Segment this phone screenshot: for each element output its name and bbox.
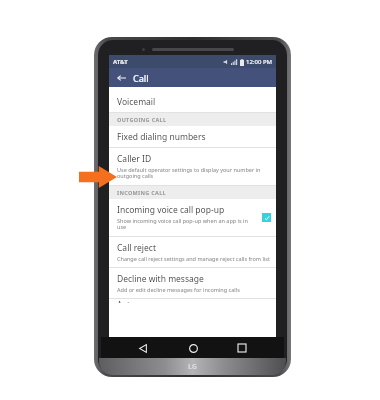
staticText: Use default operator settings to display…	[117, 166, 271, 180]
staticText: Add or edit decline messages for incomin…	[117, 286, 240, 293]
button[interactable]: Incoming voice call pop-up toggle	[262, 213, 271, 222]
button[interactable]: Recent apps	[234, 340, 250, 356]
staticText: Call	[133, 72, 149, 84]
button[interactable]: Decline with message	[109, 268, 276, 299]
staticText: Incoming voice call pop-up	[117, 204, 225, 216]
staticText: Call reject	[117, 242, 157, 254]
staticText: LG	[188, 362, 197, 372]
staticText: Auto answer	[117, 299, 165, 303]
staticText: INCOMING CALL	[117, 189, 166, 196]
button[interactable]: Home	[185, 340, 201, 356]
staticText: 12:00 PM	[246, 58, 273, 66]
button[interactable]: Fixed dialing numbers	[109, 126, 276, 148]
staticText: OUTGOING CALL	[117, 116, 167, 123]
staticText: Change call reject settings and manage r…	[117, 255, 270, 262]
button[interactable]: Incoming voice call pop-up	[109, 199, 276, 237]
staticText: Voicemail	[117, 96, 156, 108]
staticText: AT&T	[113, 58, 128, 66]
button[interactable]: Back	[135, 340, 151, 356]
button[interactable]: Voicemail	[109, 91, 276, 113]
staticText: Decline with message	[117, 273, 204, 285]
button[interactable]: Back	[114, 71, 128, 85]
button[interactable]: Call reject	[109, 237, 276, 268]
staticText: Caller ID	[117, 153, 152, 165]
button[interactable]: Caller ID	[109, 148, 276, 186]
staticText: Show incoming voice call pop-up when an …	[117, 217, 258, 231]
staticText: Fixed dialing numbers	[117, 131, 206, 143]
